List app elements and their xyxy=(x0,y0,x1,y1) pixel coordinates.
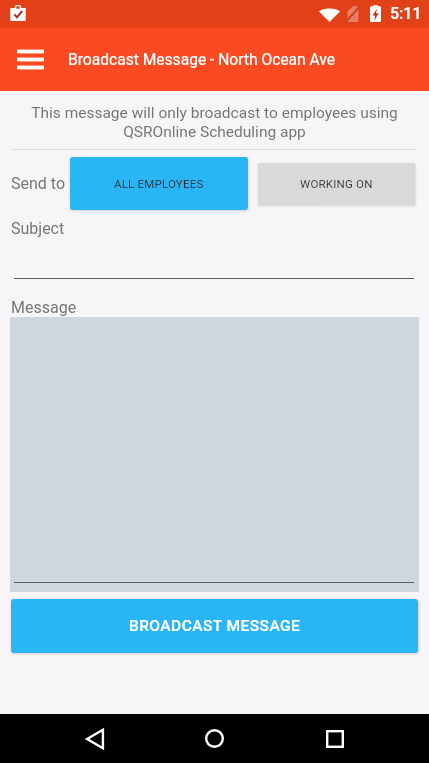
button[interactable]: BROADCAST MESSAGE xyxy=(11,599,418,653)
staticText: Subject xyxy=(11,219,65,238)
button[interactable]: Back xyxy=(65,714,125,763)
button[interactable]: Open navigation menu xyxy=(4,34,56,86)
button[interactable]: Recent apps xyxy=(305,714,365,763)
staticText: ALL EMPLOYEES xyxy=(114,177,204,190)
staticText: Message xyxy=(11,298,77,317)
staticText: BROADCAST MESSAGE xyxy=(129,617,301,635)
button[interactable]: WORKING ON xyxy=(258,163,415,205)
button[interactable]: Home xyxy=(184,714,244,763)
staticText: 5:11 xyxy=(390,4,422,23)
staticText: WORKING ON xyxy=(300,177,373,190)
staticText: This message will only broadcast to empl… xyxy=(25,104,404,141)
staticText: Send to xyxy=(11,174,66,193)
button[interactable]: ALL EMPLOYEES xyxy=(70,157,248,210)
staticText: Broadcast Message - North Ocean Ave xyxy=(68,51,336,69)
button[interactable] xyxy=(10,317,419,592)
